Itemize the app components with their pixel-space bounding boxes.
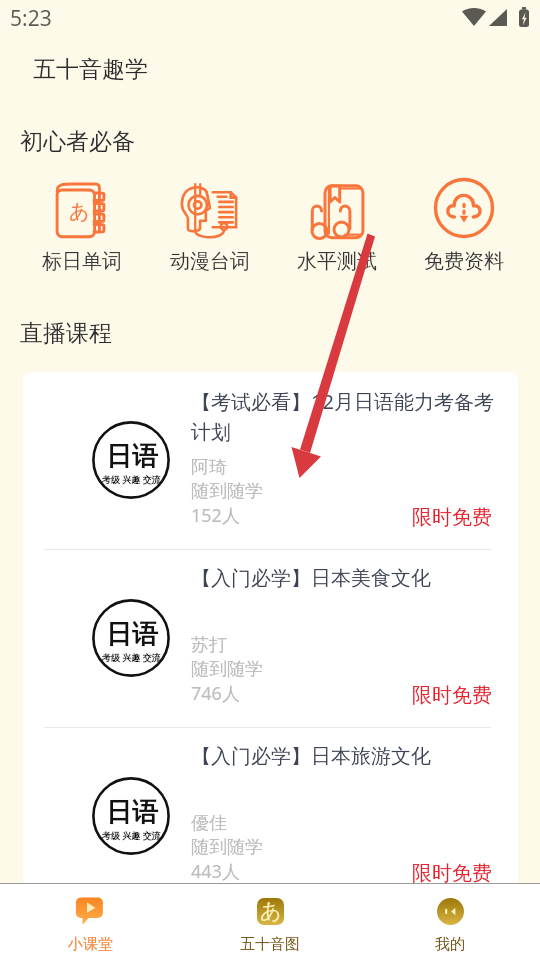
staticText: 【考试必看】12月日语能力考备考计划: [191, 388, 501, 445]
staticText: 日语: [106, 796, 158, 829]
staticText: あ: [260, 898, 282, 924]
button[interactable]: 水平测试: [273, 176, 400, 274]
staticText: 日语: [106, 440, 158, 473]
button[interactable]: 动漫台词: [146, 176, 273, 274]
other: 水平测试: [307, 178, 367, 238]
staticText: 限时免费: [412, 861, 492, 886]
staticText: 苏打 随到随学 746人: [191, 634, 263, 705]
staticText: 水平测试: [297, 249, 377, 274]
other: 动漫台词: [178, 176, 242, 240]
staticText: 5:23: [10, 4, 52, 33]
other: 免费资料: [434, 178, 494, 238]
other: 五十音图: [257, 898, 284, 925]
staticText: 考级 兴趣 交流: [102, 473, 161, 485]
other: 我的: [437, 898, 464, 925]
button[interactable]: 我的: [360, 884, 540, 960]
staticText: 标日单词: [42, 249, 122, 274]
staticText: 【入门必学】日本美食文化: [191, 566, 431, 591]
staticText: 優佳 随到随学 443人: [191, 812, 263, 883]
staticText: 阿琦 随到随学 152人: [191, 456, 263, 527]
staticText: 日语: [106, 618, 158, 651]
staticText: 直播课程: [20, 319, 112, 348]
staticText: 考级 兴趣 交流: [102, 829, 161, 841]
staticText: 【入门必学】日本旅游文化: [191, 744, 431, 769]
staticText: 初心者必备: [20, 127, 135, 156]
staticText: 我的: [435, 935, 465, 954]
staticText: 动漫台词: [170, 249, 250, 274]
other: 标日单词: [52, 178, 112, 238]
other: 小课堂: [75, 896, 105, 926]
button[interactable]: 小课堂: [0, 884, 180, 960]
button[interactable]: 免费资料: [400, 176, 527, 274]
button[interactable]: 五十音图: [180, 884, 360, 960]
button[interactable]: 五十音趣学: [33, 55, 148, 84]
button[interactable]: 日语: [23, 728, 518, 905]
button[interactable]: 日语: [23, 372, 518, 549]
staticText: 限时免费: [412, 505, 492, 530]
button[interactable]: 标日单词: [18, 176, 146, 274]
staticText: 小课堂: [68, 935, 113, 954]
button[interactable]: 日语: [23, 550, 518, 727]
staticText: 五十音图: [240, 935, 300, 954]
staticText: 考级 兴趣 交流: [102, 651, 161, 663]
staticText: 免费资料: [424, 249, 504, 274]
staticText: 限时免费: [412, 683, 492, 708]
staticText: あ: [69, 199, 90, 224]
